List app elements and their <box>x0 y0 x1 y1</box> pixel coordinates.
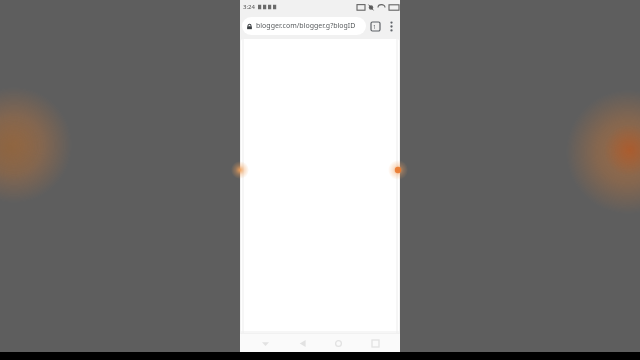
button[interactable]: Tabs <box>366 17 384 35</box>
staticText: 1 <box>373 23 377 30</box>
button[interactable]: More options <box>384 17 398 35</box>
button[interactable]: Home <box>327 334 349 352</box>
staticText: 3:24 <box>243 3 255 11</box>
button[interactable]: blogger.com/blogger.g?blogID <box>242 17 366 35</box>
button[interactable]: Recent apps <box>364 334 386 352</box>
button[interactable]: Hide keyboard <box>254 334 276 352</box>
button[interactable]: Back <box>291 334 313 352</box>
staticText: blogger.com/blogger.g?blogID <box>256 21 356 31</box>
